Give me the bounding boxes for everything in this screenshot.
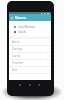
staticText: Cards	[12, 54, 21, 58]
button[interactable]: Cards	[9, 53, 51, 59]
staticText: Savings	[12, 47, 23, 51]
staticText: Movem.	[15, 16, 27, 20]
staticText: Goals	[18, 30, 26, 34]
button[interactable]: Last Movem.	[9, 24, 51, 29]
button[interactable]: Accts	[9, 39, 51, 45]
button[interactable]: Menu	[10, 16, 14, 20]
button[interactable]: Goals	[9, 29, 51, 34]
button[interactable]: Exit	[9, 67, 51, 73]
staticText: Transfer	[12, 61, 24, 65]
staticText: Last Movem.	[18, 25, 36, 29]
staticText: Accts	[12, 40, 20, 44]
button[interactable]: Transfer	[9, 60, 51, 66]
button[interactable]: Savings	[9, 46, 51, 52]
staticText: Exit	[12, 68, 18, 72]
